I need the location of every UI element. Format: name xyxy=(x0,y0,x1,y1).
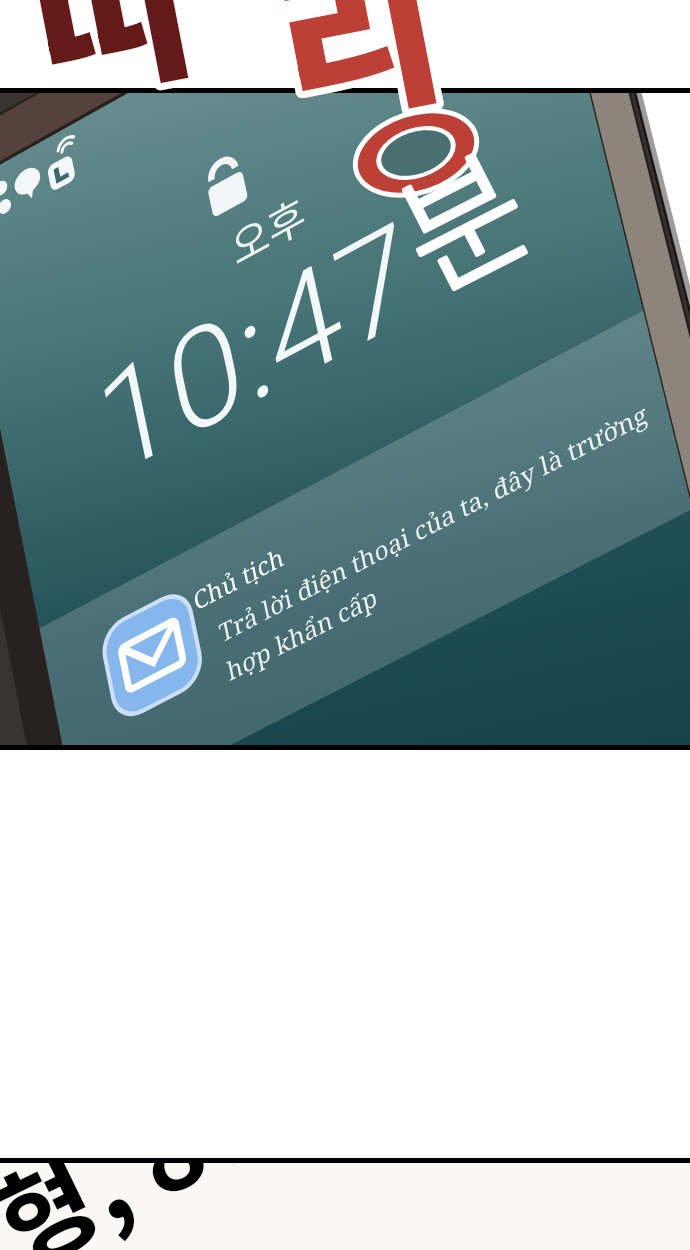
other: Comic panel: phone lock screen with noti… xyxy=(0,0,690,1250)
